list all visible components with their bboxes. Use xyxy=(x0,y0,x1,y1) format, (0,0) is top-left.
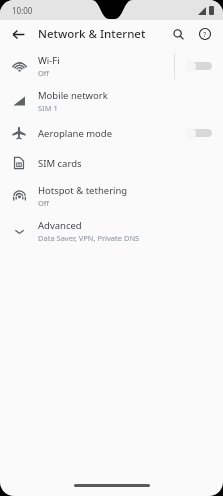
staticText: 10:00 xyxy=(12,5,33,16)
button[interactable]: Mobile network xyxy=(0,83,223,118)
staticText: Off xyxy=(38,68,50,78)
staticText: Aeroplane mode xyxy=(38,127,113,140)
button[interactable]: SIM cards xyxy=(0,148,223,178)
button[interactable]: Help xyxy=(193,22,217,46)
button[interactable]: Hotspot & tethering xyxy=(0,178,223,213)
staticText: SIM cards xyxy=(38,157,82,170)
staticText: Hotspot & tethering xyxy=(38,184,128,197)
button[interactable]: Aeroplane mode xyxy=(0,118,223,148)
button[interactable]: Wi-Fi xyxy=(0,48,223,83)
button[interactable]: Search xyxy=(166,22,190,46)
button[interactable]: Wi-Fi toggle xyxy=(184,55,214,77)
staticText: Mobile network xyxy=(38,89,108,102)
button[interactable]: Aeroplane mode toggle xyxy=(184,122,214,144)
staticText: ? xyxy=(203,29,207,39)
button[interactable]: Back xyxy=(7,23,29,45)
staticText: Network & Internet xyxy=(38,26,146,42)
staticText: Wi-Fi xyxy=(38,54,60,67)
staticText: Advanced xyxy=(38,219,82,232)
staticText: SIM 1 xyxy=(38,103,58,113)
staticText: Data Saver, VPN, Private DNS xyxy=(38,233,140,243)
staticText: Off xyxy=(38,198,50,208)
button[interactable]: Advanced xyxy=(0,213,223,248)
